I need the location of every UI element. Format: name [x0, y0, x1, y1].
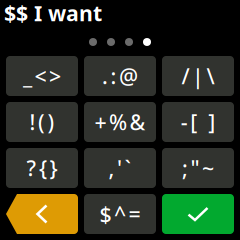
- staticText: ?{}: [26, 154, 57, 182]
- button[interactable]: ,'`: [84, 148, 156, 188]
- staticText: .:@: [102, 62, 138, 90]
- button[interactable]: Done: [162, 194, 234, 234]
- button[interactable]: $^=: [84, 194, 156, 234]
- staticText: /|\: [181, 62, 214, 90]
- button[interactable]: /|\: [162, 56, 234, 96]
- staticText: ,'`: [108, 154, 131, 182]
- button[interactable]: Delete: [6, 194, 78, 234]
- staticText: _<>: [23, 62, 61, 90]
- button[interactable]: ;"~: [162, 148, 234, 188]
- staticText: $^=: [99, 200, 140, 228]
- button[interactable]: +%&: [84, 102, 156, 142]
- staticText: ;"~: [182, 154, 214, 182]
- button[interactable]: -[ ]: [162, 102, 234, 142]
- staticText: !(): [29, 108, 54, 136]
- staticText: +%&: [94, 108, 145, 136]
- button[interactable]: !(): [6, 102, 78, 142]
- button[interactable]: ?{}: [6, 148, 78, 188]
- button[interactable]: .:@: [84, 56, 156, 96]
- button[interactable]: _<>: [6, 56, 78, 96]
- staticText: -[ ]: [181, 108, 215, 136]
- staticText: $$ I want: [4, 0, 102, 27]
